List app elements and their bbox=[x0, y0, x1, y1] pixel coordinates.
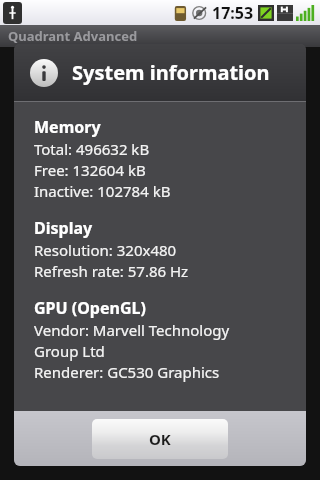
staticText: Memory bbox=[34, 116, 101, 138]
staticText: System information bbox=[28, 205, 204, 231]
button[interactable]: OK bbox=[92, 419, 228, 459]
staticText: Renderer: GC530 Graphics bbox=[34, 362, 220, 382]
staticText: Refresh rate: 57.86 Hz bbox=[34, 261, 189, 281]
staticText: Result browser bbox=[28, 139, 161, 165]
other: USB connected bbox=[3, 2, 22, 24]
staticText: Quadrant Advanced bbox=[8, 27, 138, 45]
staticText: Group Ltd bbox=[34, 341, 105, 361]
staticText: Run full benchmark bbox=[28, 73, 203, 99]
staticText: Inactive: 102784 kB bbox=[34, 181, 171, 201]
staticText: OK bbox=[149, 429, 171, 449]
staticText: Resolution: 320x480 bbox=[34, 240, 177, 260]
staticText: System information bbox=[72, 59, 270, 86]
staticText: Display bbox=[34, 217, 93, 239]
staticText: Total: 496632 kB bbox=[34, 139, 150, 159]
staticText: 17:53 bbox=[212, 2, 254, 24]
staticText: Vendor: Marvell Technology bbox=[34, 320, 230, 340]
staticText: Free: 132604 kB bbox=[34, 160, 146, 180]
staticText: About bbox=[28, 271, 82, 297]
staticText: GPU (OpenGL) bbox=[34, 297, 146, 319]
